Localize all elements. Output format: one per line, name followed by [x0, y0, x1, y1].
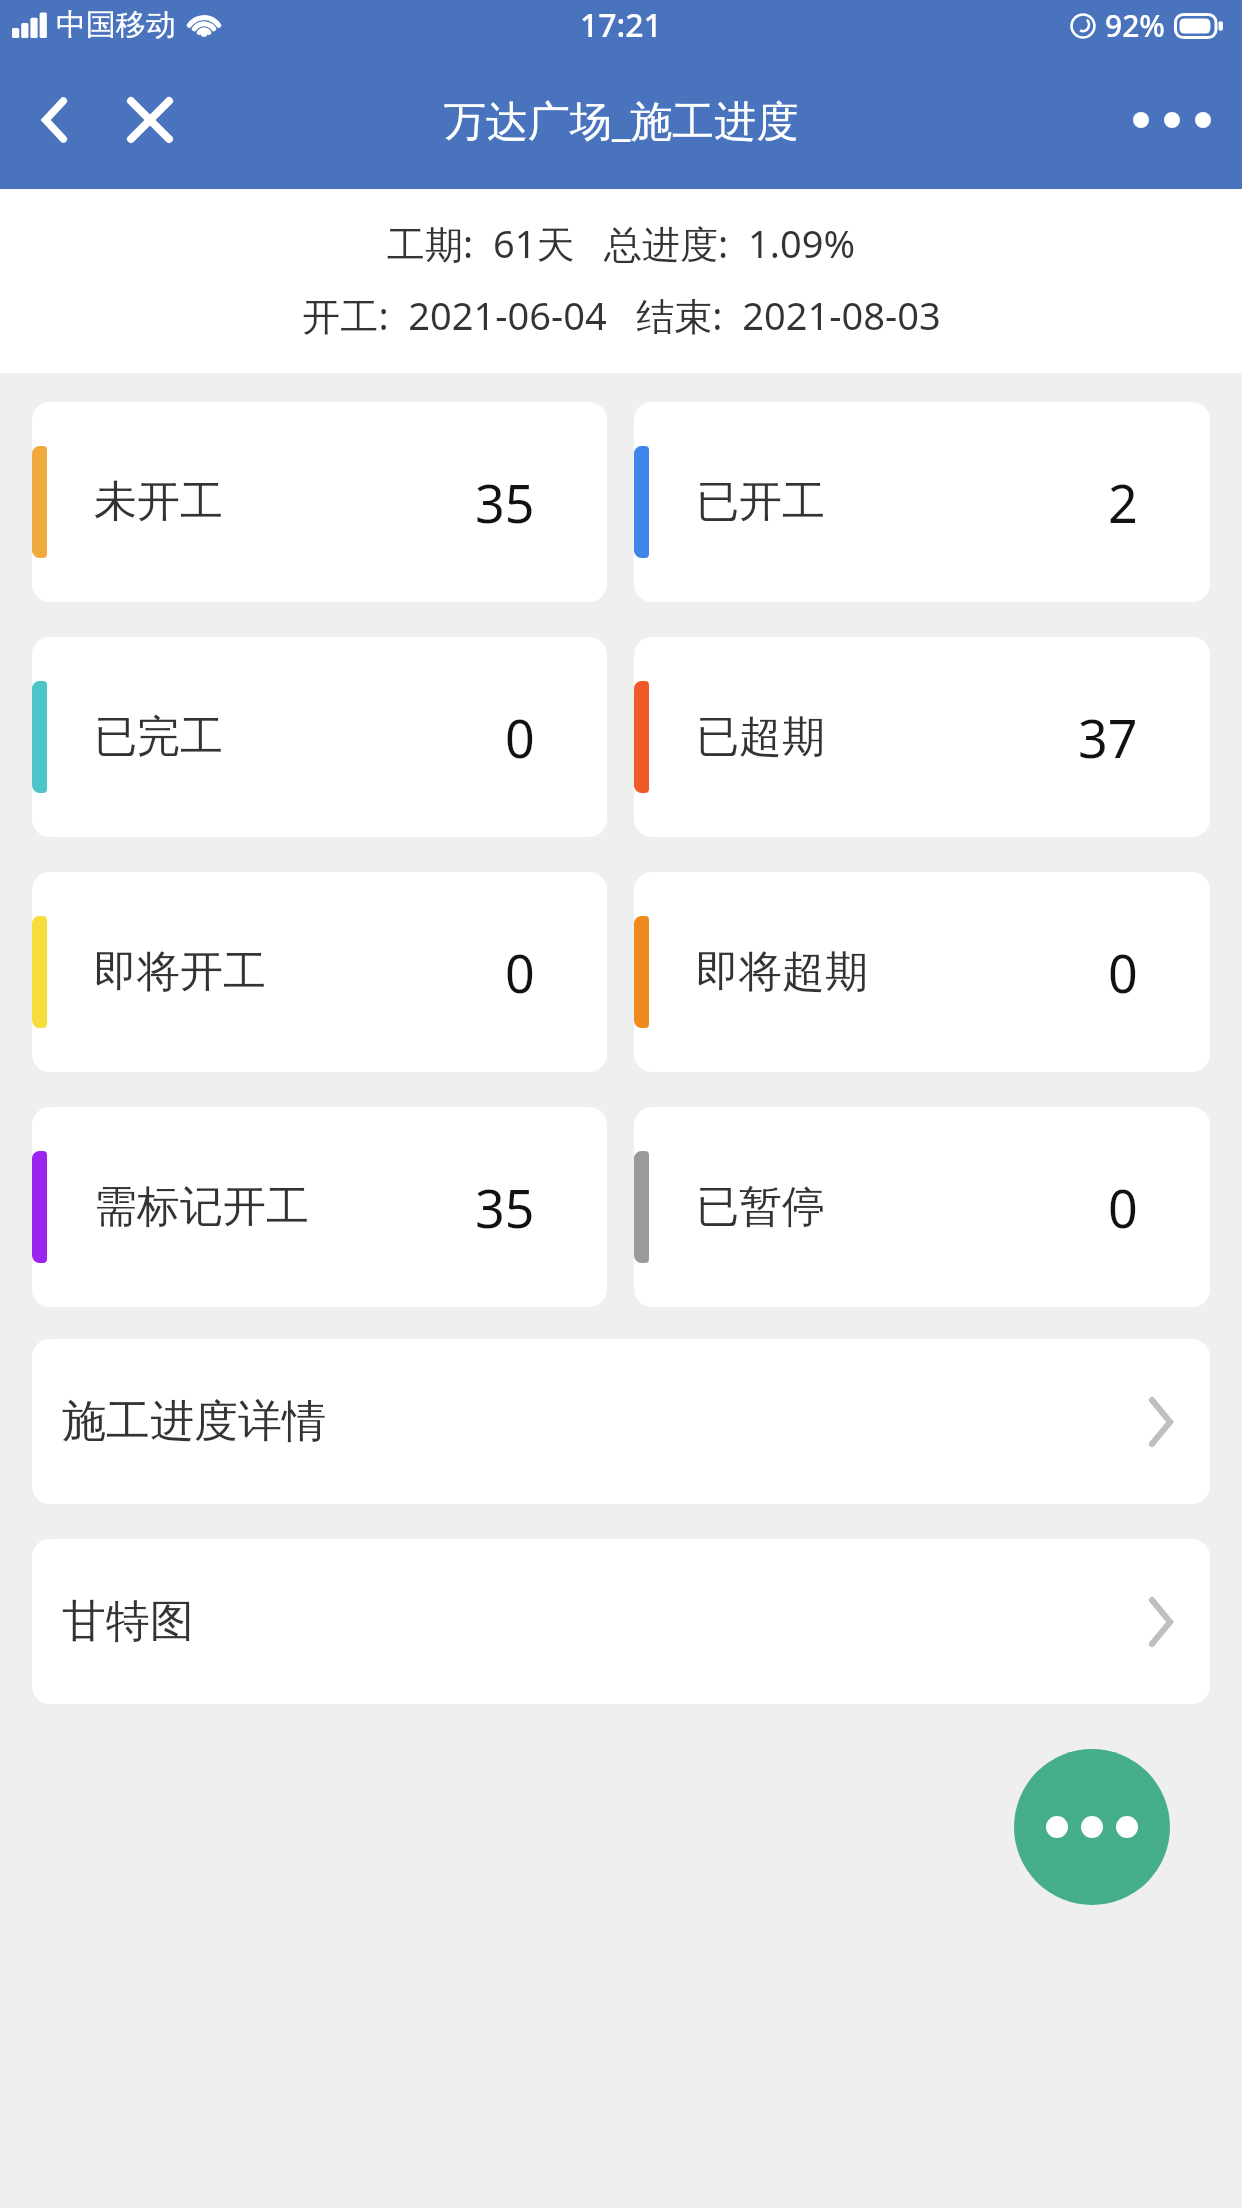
staticText: 0: [505, 702, 535, 773]
staticText: 已完工: [94, 710, 223, 764]
staticText: 工期: 61天 总进度: 1.09%: [387, 217, 855, 269]
button[interactable]: Close: [105, 75, 195, 165]
staticText: 已暂停: [696, 1180, 825, 1234]
staticText: 需标记开工: [94, 1180, 309, 1234]
button[interactable]: 已超期: [634, 637, 1210, 837]
staticText: 0: [1108, 937, 1138, 1008]
button[interactable]: 已开工: [634, 402, 1210, 602]
staticText: 施工进度详情: [62, 1394, 326, 1449]
button[interactable]: 即将超期: [634, 872, 1210, 1072]
button[interactable]: 施工进度详情: [32, 1339, 1210, 1504]
staticText: 已开工: [696, 475, 825, 529]
staticText: 即将开工: [94, 945, 266, 999]
button[interactable]: More actions: [1014, 1749, 1170, 1905]
staticText: 0: [505, 937, 535, 1008]
staticText: 甘特图: [62, 1594, 194, 1649]
staticText: 0: [1108, 1172, 1138, 1243]
staticText: 35: [475, 467, 535, 538]
staticText: 万达广场_施工进度: [444, 91, 799, 148]
staticText: 37: [1078, 702, 1138, 773]
button[interactable]: More options: [1122, 75, 1222, 165]
staticText: 未开工: [94, 475, 223, 529]
staticText: 35: [475, 1172, 535, 1243]
button[interactable]: Back: [10, 75, 100, 165]
staticText: 中国移动: [56, 6, 176, 44]
button[interactable]: 已完工: [32, 637, 607, 837]
staticText: 开工: 2021-06-04 结束: 2021-08-03: [302, 289, 941, 341]
staticText: 92%: [1105, 5, 1165, 46]
staticText: 已超期: [696, 710, 825, 764]
staticText: 2: [1108, 467, 1138, 538]
button[interactable]: 需标记开工: [32, 1107, 607, 1307]
button[interactable]: 即将开工: [32, 872, 607, 1072]
staticText: 即将超期: [696, 945, 868, 999]
button[interactable]: 甘特图: [32, 1539, 1210, 1704]
button[interactable]: 未开工: [32, 402, 607, 602]
button[interactable]: 已暂停: [634, 1107, 1210, 1307]
staticText: 17:21: [580, 3, 662, 47]
